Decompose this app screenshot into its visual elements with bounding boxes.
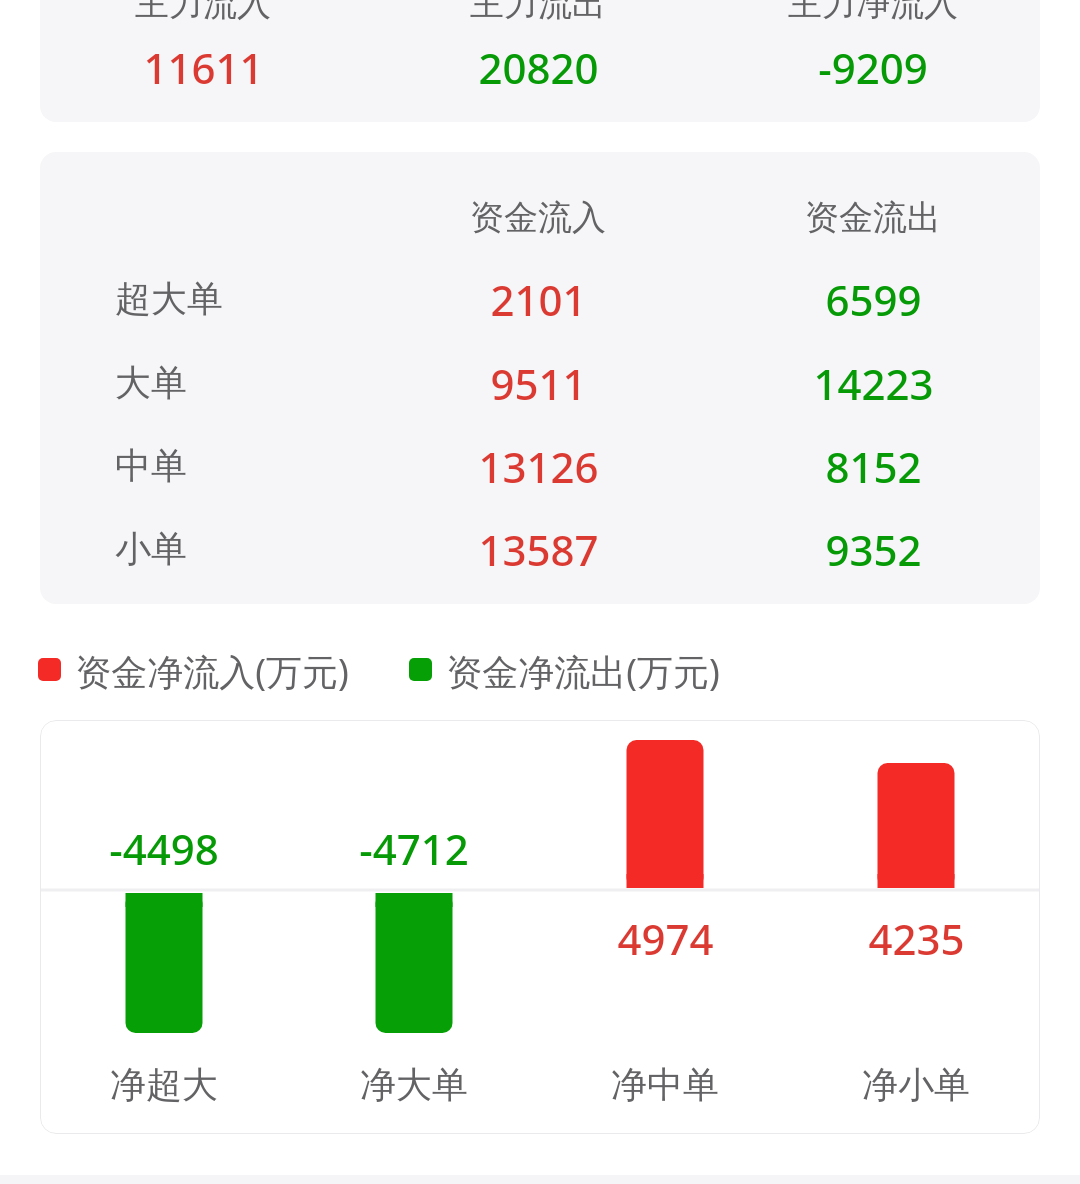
button[interactable]: 主力流入	[40, 0, 1040, 122]
staticText: 超大单	[115, 276, 223, 321]
staticText: 4235	[868, 910, 965, 964]
button[interactable]: 资金净流出(万元)	[409, 647, 720, 691]
staticText: 4974	[617, 910, 714, 964]
staticText: 资金净流出(万元)	[446, 647, 720, 691]
staticText: 小单	[115, 526, 187, 571]
staticText: -4498	[109, 820, 219, 874]
button[interactable]: 资金净流入(万元)	[38, 647, 349, 691]
staticText: 14223	[813, 355, 934, 409]
staticText: 6599	[825, 271, 922, 325]
button[interactable]: 资金流入	[40, 152, 1040, 604]
staticText: 8152	[825, 438, 922, 492]
staticText: 9352	[825, 521, 922, 575]
staticText: 11611	[143, 39, 264, 96]
staticText: 净大单	[360, 1062, 468, 1107]
staticText: 13587	[478, 521, 599, 575]
staticText: -9209	[818, 39, 928, 96]
staticText: -4712	[359, 820, 469, 874]
staticText: 净超大	[110, 1062, 218, 1107]
button[interactable]: -4498	[40, 720, 1040, 1134]
staticText: 2101	[490, 271, 587, 325]
staticText: 净中单	[611, 1062, 719, 1107]
staticText: 中单	[115, 443, 187, 488]
staticText: 20820	[478, 39, 599, 96]
staticText: 大单	[115, 360, 187, 405]
staticText: 主力净流入	[788, 0, 958, 25]
staticText: 主力流入	[135, 0, 271, 25]
staticText: 净小单	[862, 1062, 970, 1107]
staticText: 资金净流入(万元)	[75, 647, 349, 691]
staticText: 资金流出	[805, 196, 941, 239]
staticText: 13126	[478, 438, 599, 492]
staticText: 主力流出	[470, 0, 606, 25]
staticText: 资金流入	[470, 196, 606, 239]
staticText: 9511	[490, 355, 587, 409]
